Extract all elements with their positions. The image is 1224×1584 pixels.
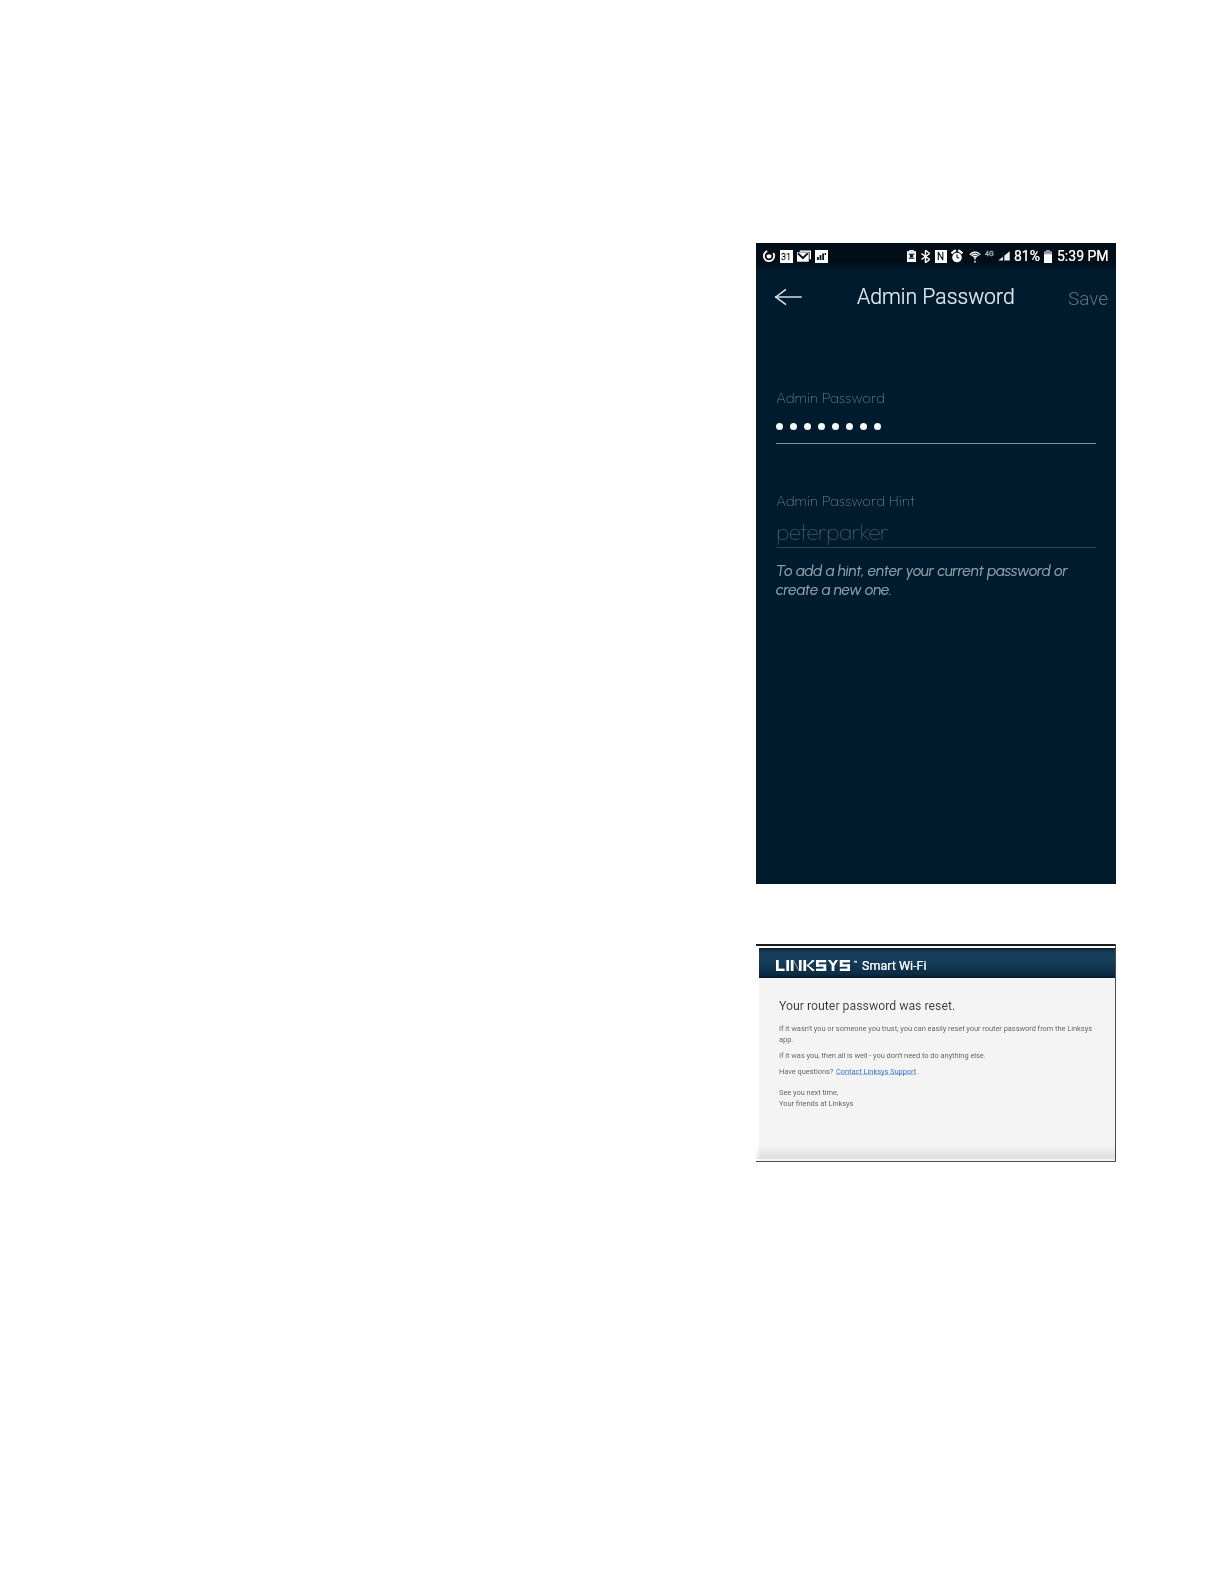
staticText: N <box>937 251 945 263</box>
staticText: 31 <box>781 252 792 263</box>
staticText: ™ <box>854 959 858 966</box>
staticText: Smart Wi-Fi <box>862 958 927 973</box>
staticText: Save <box>1068 287 1109 309</box>
button[interactable]: Save <box>1059 281 1116 315</box>
staticText: Have questions? <box>779 1067 836 1076</box>
staticText: If it was you, then all is well - you do… <box>779 1051 986 1060</box>
staticText: Your router password was reset. <box>779 999 956 1013</box>
staticText: If it wasn't you or someone you trust, y… <box>779 1024 1092 1044</box>
staticText: To add a hint, enter your current passwo… <box>776 562 1096 598</box>
staticText: 81% <box>1014 248 1040 264</box>
staticText: Admin Password <box>857 284 1015 309</box>
staticText: See you next time, Your friends at Links… <box>779 1088 854 1108</box>
staticText: 5:39 PM <box>1057 248 1109 264</box>
staticText: . <box>917 1067 919 1076</box>
button[interactable]: Contact Linksys Support <box>836 1067 917 1076</box>
staticText: peterparker <box>776 517 889 546</box>
staticText: Admin Password Hint <box>776 491 915 510</box>
staticText: Admin Password <box>776 388 886 407</box>
staticText: 4G <box>985 250 994 258</box>
button[interactable]: Back <box>769 278 807 316</box>
